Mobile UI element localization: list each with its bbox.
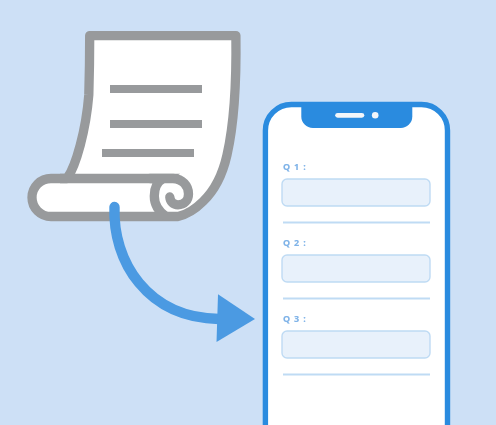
button[interactable] — [0, 0, 496, 425]
